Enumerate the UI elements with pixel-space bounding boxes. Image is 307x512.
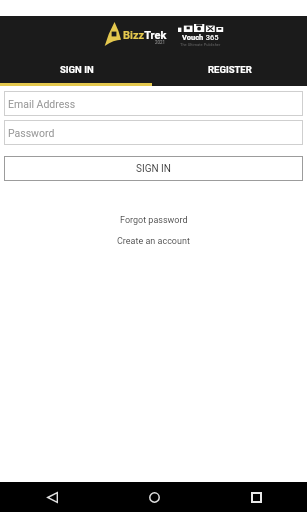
staticText: SIGN IN: [60, 64, 94, 75]
button[interactable]: Email Address: [4, 91, 303, 116]
staticText: BizzTrek: [123, 29, 167, 42]
button[interactable]: SIGN IN: [0, 54, 153, 84]
staticText: Create an account: [117, 236, 190, 247]
staticText: SIGN IN: [136, 163, 171, 175]
button[interactable]: Recent apps: [240, 482, 272, 512]
button[interactable]: Password: [4, 120, 303, 145]
button[interactable]: Home: [138, 482, 170, 512]
staticText: Email Address: [8, 98, 76, 110]
staticText: The Ultimate Publisher: [180, 42, 221, 47]
button[interactable]: Back: [36, 482, 68, 512]
staticText: Password: [8, 127, 55, 139]
staticText: Forgot password: [120, 215, 188, 226]
button[interactable]: SIGN IN: [4, 156, 303, 181]
staticText: 365: [204, 33, 219, 42]
staticText: Vouch: [182, 33, 204, 42]
button[interactable]: Create an account: [111, 235, 196, 248]
button[interactable]: Forgot password: [114, 214, 194, 227]
button[interactable]: REGISTER: [153, 54, 307, 84]
staticText: 2021: [155, 40, 166, 45]
staticText: REGISTER: [208, 64, 252, 75]
